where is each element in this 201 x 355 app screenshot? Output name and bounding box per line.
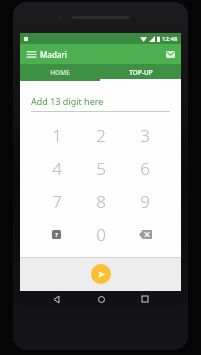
button[interactable]: HOME — [20, 64, 100, 81]
button[interactable]: 3 — [123, 118, 167, 152]
button[interactable]: Open navigation drawer — [24, 47, 38, 61]
button[interactable]: 9 — [123, 185, 167, 218]
button[interactable]: Home — [93, 291, 109, 307]
button[interactable]: 8 — [79, 185, 123, 218]
button[interactable]: Backspace — [123, 218, 167, 251]
button[interactable]: Back — [48, 291, 64, 307]
staticText: TOP-UP — [129, 68, 153, 77]
button[interactable]: 0 — [79, 218, 123, 251]
button[interactable]: Add 13 digit here — [31, 95, 170, 112]
staticText: ? — [55, 231, 58, 239]
button[interactable]: Recent apps — [137, 291, 153, 307]
staticText: 4 — [52, 157, 62, 180]
button[interactable]: 2 — [79, 118, 123, 152]
staticText: 8 — [96, 190, 106, 213]
button[interactable]: 1 — [34, 118, 79, 152]
button[interactable]: 7 — [34, 185, 79, 218]
staticText: 7 — [52, 190, 62, 213]
button[interactable]: 6 — [123, 152, 167, 185]
staticText: 12:48 — [162, 35, 178, 43]
staticText: 0 — [96, 223, 106, 246]
button[interactable]: Help — [34, 218, 79, 251]
staticText: 1 — [52, 124, 62, 147]
staticText: 2 — [96, 124, 106, 147]
button[interactable]: Send — [91, 264, 111, 284]
staticText: 6 — [140, 157, 150, 180]
staticText: Madari — [40, 49, 67, 60]
staticText: 5 — [96, 157, 106, 180]
button[interactable]: Messages — [163, 47, 177, 61]
staticText: HOME — [50, 68, 70, 77]
staticText: 3 — [140, 124, 150, 147]
staticText: 9 — [140, 190, 150, 213]
staticText: Add 13 digit here — [31, 95, 104, 107]
button[interactable]: 5 — [79, 152, 123, 185]
button[interactable]: 4 — [34, 152, 79, 185]
button[interactable]: TOP-UP — [100, 64, 181, 81]
